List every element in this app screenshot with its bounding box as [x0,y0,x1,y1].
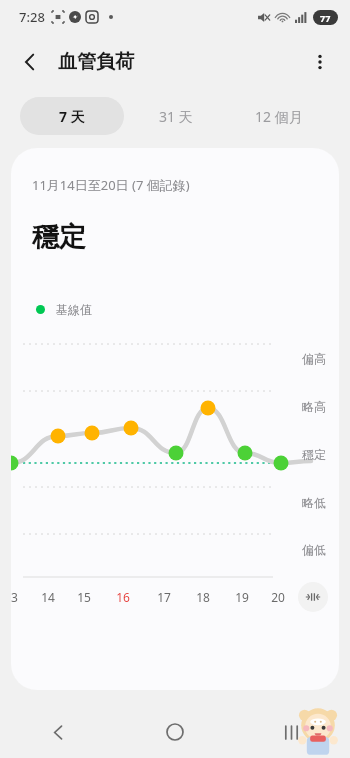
staticText: 偏低 [302,542,326,557]
button[interactable]: Home [116,706,233,758]
staticText: 18 [196,589,210,605]
button[interactable]: Recent apps [233,706,350,758]
staticText: 7:28 [19,8,45,26]
button[interactable]: 7 天 [20,97,124,135]
staticText: 31 天 [159,107,193,126]
staticText: 15 [77,589,91,605]
staticText: 3 [11,589,18,605]
staticText: 11月14日至20日 (7 個記錄) [32,176,190,194]
staticText: 基線值 [56,302,92,317]
staticText: 穩定 [32,220,86,254]
staticText: 12 個月 [255,107,303,126]
staticText: 略高 [302,399,326,414]
button[interactable]: 12 個月 [227,97,330,135]
staticText: 7 天 [59,107,85,126]
button[interactable]: More options [298,40,342,84]
staticText: 16 [116,589,130,605]
staticText: 77 [320,12,331,24]
staticText: 偏高 [302,351,326,366]
staticText: 19 [235,589,249,605]
staticText: 血管負荷 [58,50,134,74]
staticText: 穩定 [302,447,326,462]
staticText: 17 [157,589,171,605]
button[interactable]: 31 天 [124,97,227,135]
button[interactable]: Back [0,706,116,758]
button[interactable]: Back [8,40,52,84]
staticText: 略低 [302,495,326,510]
staticText: 14 [41,589,55,605]
staticText: 20 [271,589,285,605]
button[interactable]: Fit chart to screen [298,582,328,612]
